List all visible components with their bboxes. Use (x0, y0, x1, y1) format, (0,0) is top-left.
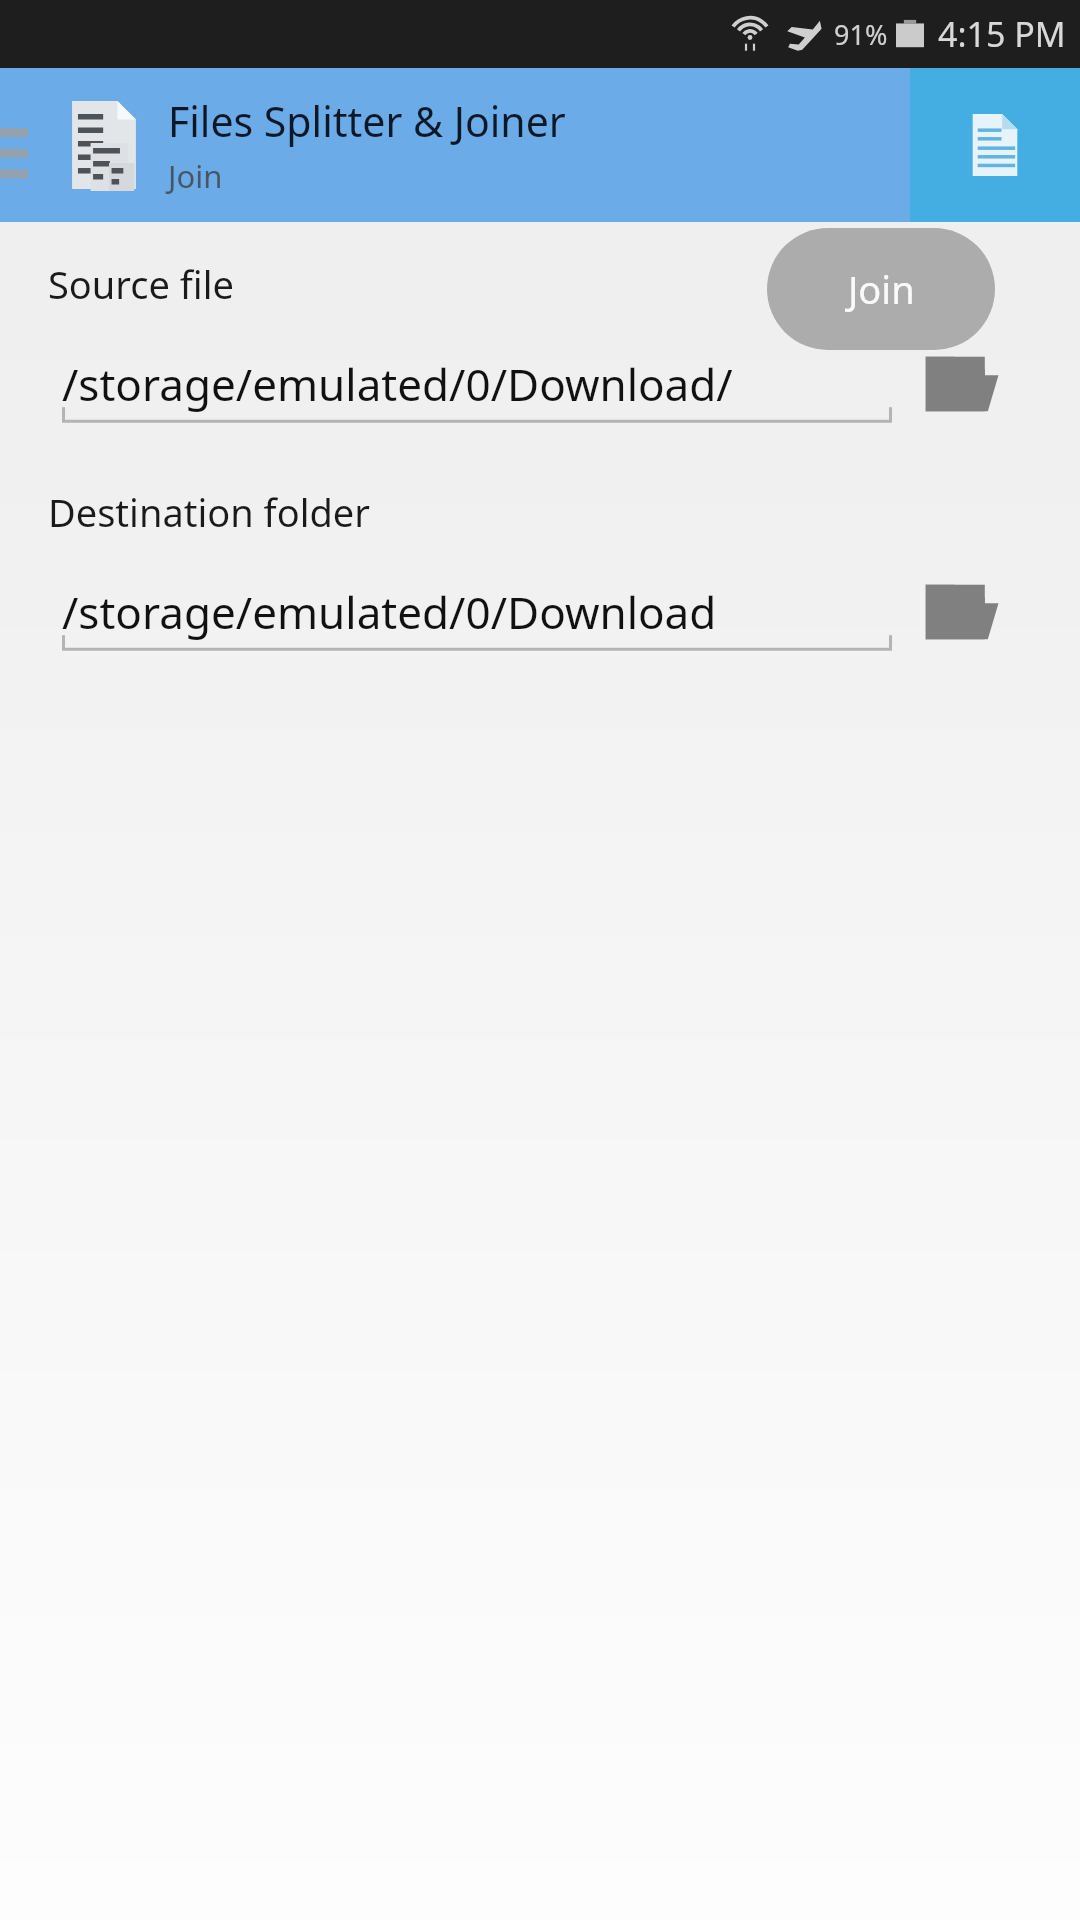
staticText: Source file (48, 258, 234, 310)
button[interactable]: /storage/emulated/0/Download/ (62, 338, 892, 430)
button[interactable]: /storage/emulated/0/Download (62, 566, 892, 658)
staticText: Files Splitter & Joiner (168, 93, 566, 149)
staticText: /storage/emulated/0/Download/ (62, 354, 733, 414)
staticText: Join (848, 263, 915, 315)
staticText: Join (168, 155, 223, 197)
staticText: /storage/emulated/0/Download (62, 582, 717, 642)
button[interactable]: Join (767, 228, 995, 350)
staticText: 4:15 PM (938, 11, 1066, 57)
button[interactable]: Browse (914, 338, 1010, 430)
button[interactable]: Navigation drawer (0, 95, 56, 195)
staticText: Destination folder (48, 486, 370, 538)
button[interactable]: Split (910, 68, 1080, 222)
button[interactable]: Browse (914, 566, 1010, 658)
staticText: 91% (834, 16, 888, 53)
